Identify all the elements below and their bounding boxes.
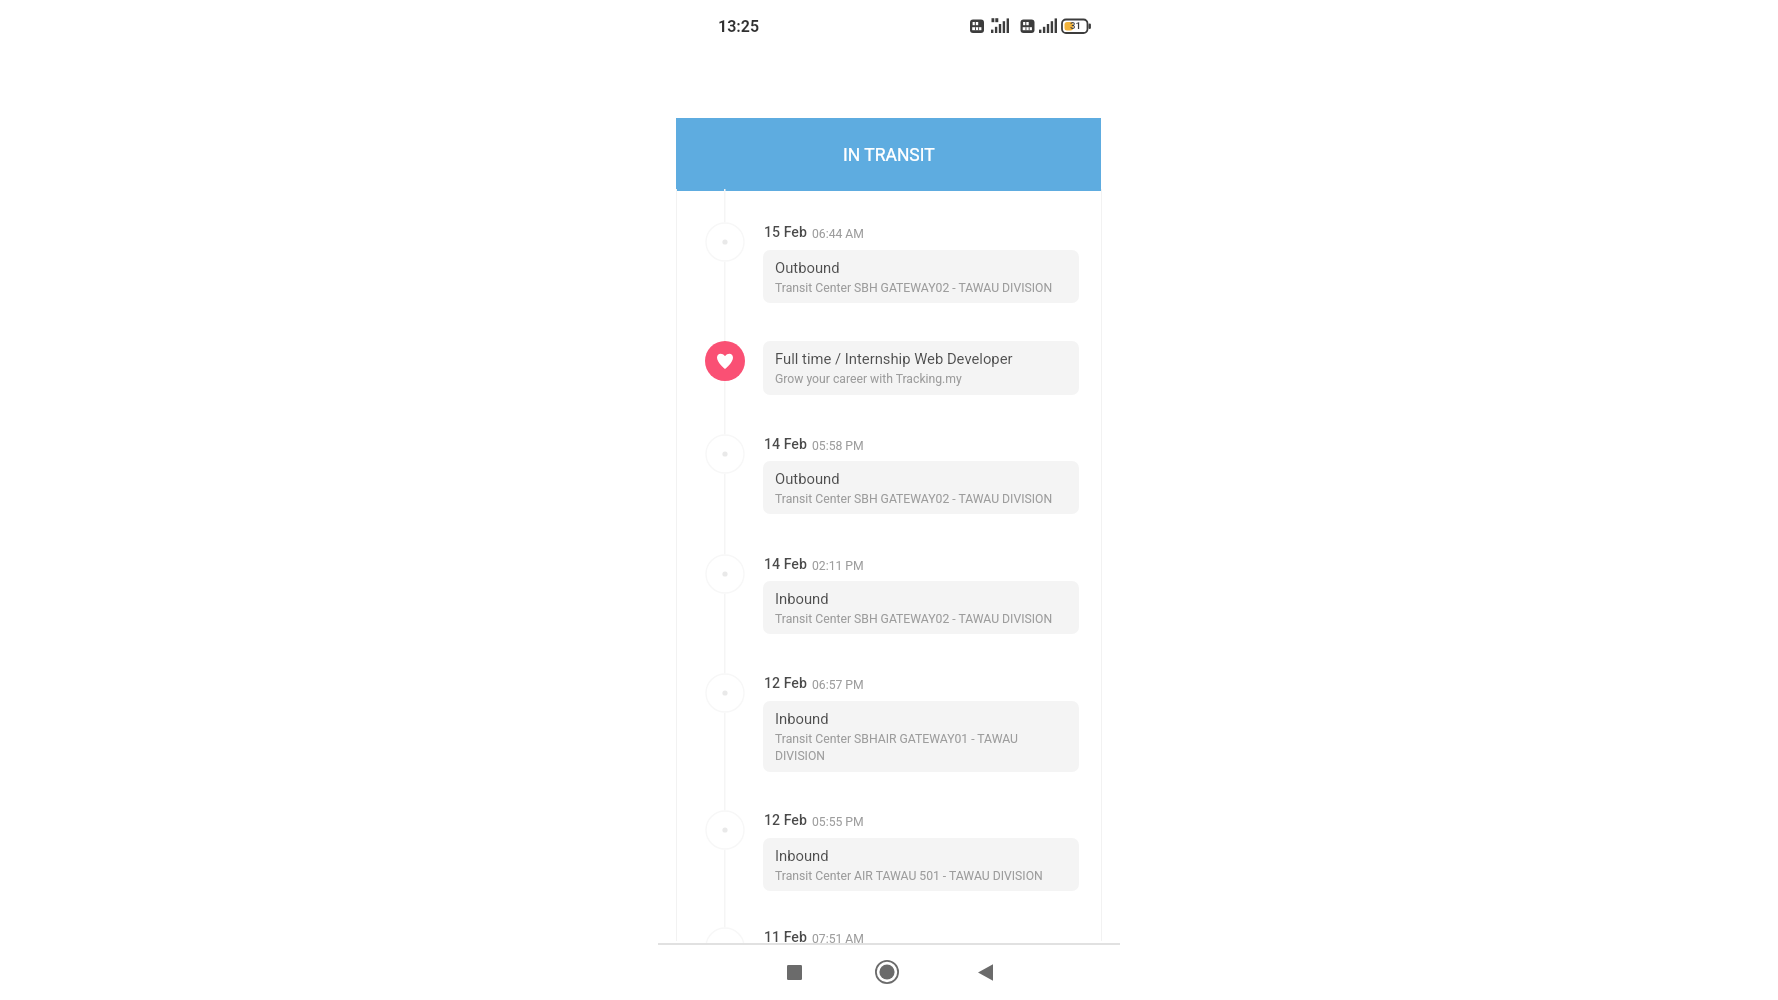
staticText: Grow your career with Tracking.my (775, 372, 962, 386)
button[interactable]: Inbound (763, 838, 1079, 891)
staticText: 14 Feb (764, 556, 807, 573)
staticText: Transit Center AIR TAWAU 501 - TAWAU DIV… (775, 869, 1043, 883)
button[interactable]: Home (871, 956, 903, 988)
button[interactable]: 12 Feb (764, 675, 1079, 692)
staticText: Inbound (775, 590, 829, 607)
button[interactable]: Inbound (763, 581, 1079, 634)
staticText: Outbound (775, 259, 840, 276)
staticText: 07:51 AM (812, 932, 864, 944)
button[interactable]: 15 Feb (764, 224, 1079, 241)
staticText: 31 (1070, 20, 1081, 31)
staticText: 12 Feb (764, 675, 807, 692)
staticText: 11 Feb (764, 929, 807, 944)
staticText: Transit Center SBH GATEWAY02 - TAWAU DIV… (775, 281, 1053, 295)
staticText: Inbound (775, 710, 829, 727)
staticText: Transit Center SBH GATEWAY02 - TAWAU DIV… (775, 492, 1053, 506)
button[interactable]: Back (969, 956, 1001, 988)
staticText: 13:25 (718, 17, 760, 36)
button[interactable]: Promoted job (705, 341, 745, 381)
button[interactable]: Outbound (763, 461, 1079, 514)
button[interactable]: Outbound (763, 250, 1079, 303)
button[interactable]: 14 Feb (764, 556, 1079, 573)
button[interactable]: Inbound (763, 701, 1079, 772)
staticText: Transit Center SBHAIR GATEWAY01 - TAWAU … (775, 732, 1018, 763)
staticText: 12 Feb (764, 812, 807, 829)
button[interactable]: 14 Feb (764, 436, 1079, 453)
staticText: 05:55 PM (812, 815, 864, 829)
staticText: 15 Feb (764, 224, 807, 241)
staticText: Transit Center SBH GATEWAY02 - TAWAU DIV… (775, 612, 1053, 626)
button[interactable]: Recent apps (778, 956, 810, 988)
staticText: Full time / Internship Web Developer (775, 350, 1013, 367)
button[interactable]: 12 Feb (764, 812, 1079, 829)
button[interactable]: IN TRANSIT (676, 118, 1101, 191)
staticText: 02:11 PM (812, 559, 864, 573)
staticText: 06:57 PM (812, 678, 864, 692)
button[interactable]: 11 Feb (764, 929, 1079, 944)
staticText: IN TRANSIT (843, 145, 935, 166)
button[interactable]: Full time / Internship Web Developer (763, 341, 1079, 395)
staticText: 14 Feb (764, 436, 807, 453)
staticText: Outbound (775, 470, 840, 487)
staticText: Inbound (775, 847, 829, 864)
staticText: 06:44 AM (812, 227, 864, 241)
staticText: 05:58 PM (812, 439, 864, 453)
